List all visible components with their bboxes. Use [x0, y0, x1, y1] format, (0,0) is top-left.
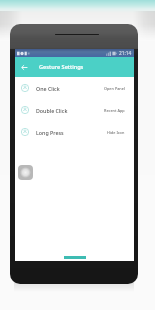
staticText: Open Panel	[104, 86, 125, 91]
button[interactable]: Double Click	[15, 99, 134, 121]
button[interactable]: One Click	[15, 77, 134, 99]
button[interactable]: Floating assistive button	[18, 165, 33, 180]
staticText: 21:14	[119, 50, 132, 57]
staticText: One Click	[36, 85, 60, 92]
staticText: Gesture Settings	[39, 63, 84, 71]
staticText: Double Click	[36, 107, 68, 114]
staticText: Hide Icon	[107, 130, 125, 135]
staticText: Recent App	[104, 108, 125, 113]
staticText: Long Press	[36, 129, 64, 136]
button[interactable]: Back	[15, 57, 34, 77]
button[interactable]: Long Press	[15, 121, 134, 143]
